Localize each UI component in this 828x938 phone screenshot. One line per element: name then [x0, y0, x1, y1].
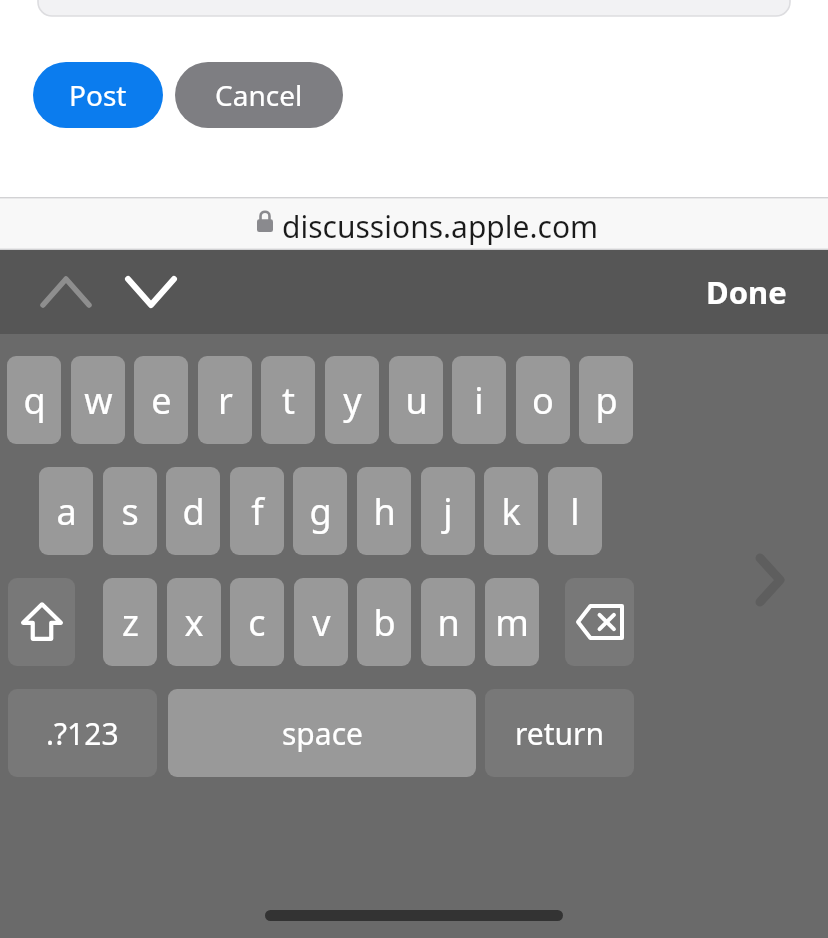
button[interactable]: b — [357, 578, 411, 666]
button[interactable]: a — [39, 467, 93, 555]
button[interactable]: u — [389, 356, 443, 444]
staticText: o — [532, 376, 554, 425]
button[interactable]: q — [7, 356, 61, 444]
staticText: u — [405, 376, 428, 425]
staticText: d — [182, 487, 205, 536]
staticText: space — [282, 713, 363, 754]
button[interactable]: s — [103, 467, 157, 555]
staticText: g — [309, 487, 332, 536]
staticText: b — [373, 598, 396, 647]
staticText: j — [443, 487, 453, 536]
button[interactable]: k — [484, 467, 538, 555]
button[interactable]: n — [421, 578, 475, 666]
button[interactable]: d — [166, 467, 220, 555]
button[interactable]: c — [230, 578, 284, 666]
staticText: l — [570, 487, 580, 536]
staticText: discussions.apple.com — [282, 206, 599, 247]
button[interactable]: g — [293, 467, 347, 555]
button[interactable]: h — [357, 467, 411, 555]
staticText: e — [151, 376, 172, 425]
staticText: p — [595, 376, 618, 425]
button[interactable]: p — [579, 356, 633, 444]
staticText: s — [121, 487, 139, 536]
staticText: return — [515, 713, 605, 754]
staticText: t — [282, 376, 295, 425]
button[interactable]: y — [325, 356, 379, 444]
staticText: Post — [69, 76, 127, 114]
button[interactable]: Next field — [115, 264, 187, 320]
button[interactable]: Show keyboard — [742, 540, 798, 620]
staticText: k — [501, 487, 521, 536]
button[interactable]: w — [71, 356, 125, 444]
button[interactable]: Secure connection — [0, 197, 828, 250]
button[interactable]: z — [103, 578, 157, 666]
button[interactable]: f — [230, 467, 284, 555]
button[interactable]: Backspace — [565, 578, 634, 666]
staticText: z — [122, 598, 139, 647]
staticText: y — [343, 376, 362, 425]
staticText: a — [56, 487, 77, 536]
staticText: Done — [706, 271, 787, 313]
staticText: q — [23, 376, 46, 425]
button[interactable]: return — [485, 689, 634, 777]
other: Secure connection — [257, 210, 273, 232]
button[interactable]: x — [167, 578, 221, 666]
staticText: Cancel — [215, 76, 303, 114]
button[interactable]: Done — [688, 262, 804, 322]
button[interactable]: t — [261, 356, 315, 444]
button[interactable]: j — [421, 467, 475, 555]
button[interactable]: r — [198, 356, 252, 444]
staticText: .?123 — [46, 713, 119, 754]
button[interactable]: l — [548, 467, 602, 555]
button[interactable]: m — [485, 578, 539, 666]
button[interactable]: o — [516, 356, 570, 444]
staticText: h — [373, 487, 396, 536]
button[interactable] — [38, 0, 790, 16]
button[interactable]: space — [168, 689, 476, 777]
staticText: w — [84, 376, 113, 425]
staticText: x — [184, 598, 204, 647]
staticText: i — [474, 376, 484, 425]
button[interactable]: Post — [33, 62, 163, 128]
staticText: f — [251, 487, 264, 536]
button[interactable]: Shift — [8, 578, 75, 666]
button[interactable]: e — [134, 356, 188, 444]
button[interactable]: i — [452, 356, 506, 444]
button[interactable]: v — [294, 578, 348, 666]
staticText: c — [248, 598, 266, 647]
staticText: n — [437, 598, 460, 647]
staticText: r — [218, 376, 233, 425]
button[interactable]: Previous field — [30, 264, 102, 320]
button[interactable]: .?123 — [8, 689, 157, 777]
staticText: m — [495, 598, 529, 647]
staticText: v — [312, 598, 331, 647]
button[interactable]: Cancel — [175, 62, 343, 128]
